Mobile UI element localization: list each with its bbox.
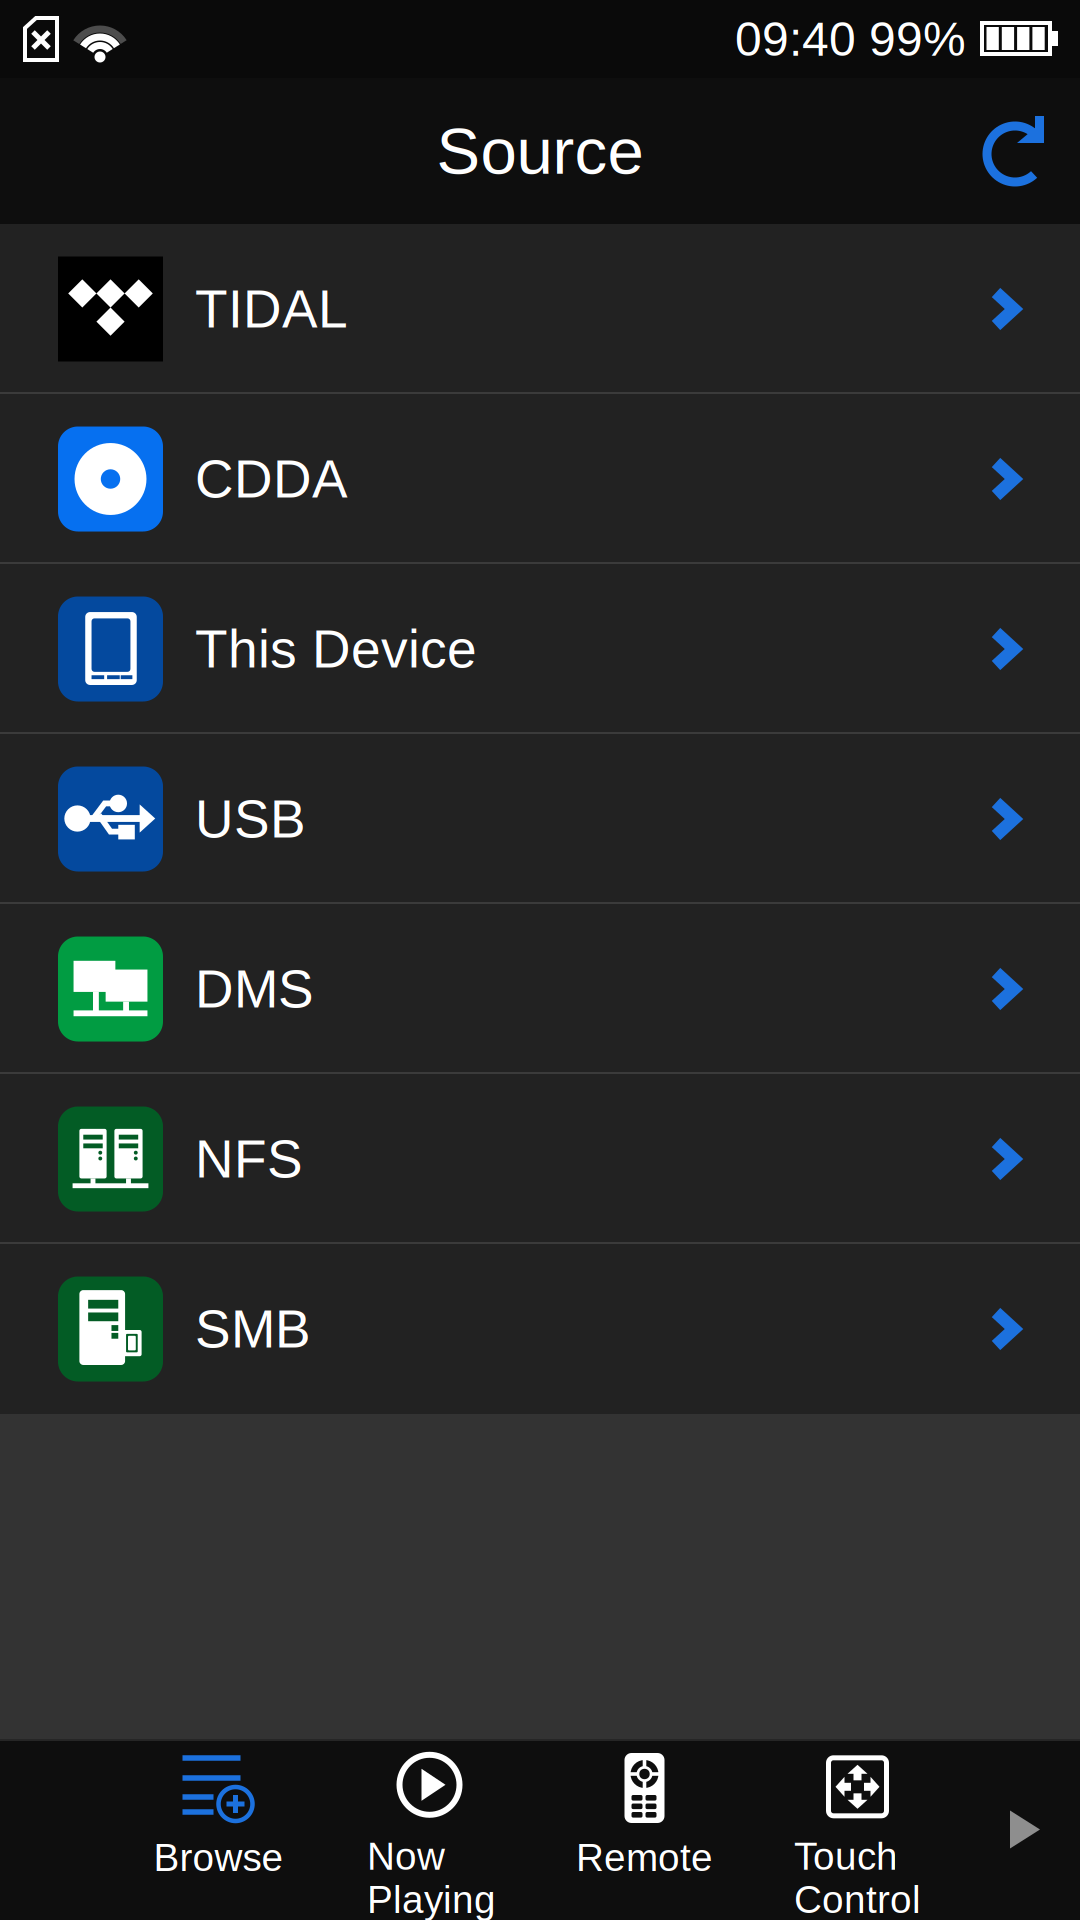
staticText: 09:40 99% <box>735 12 966 66</box>
button[interactable]: NFS <box>0 1074 1080 1244</box>
button[interactable]: TIDAL <box>0 224 1080 394</box>
staticText: This Device <box>195 619 477 679</box>
staticText: DMS <box>195 959 314 1019</box>
button[interactable]: Touch Control <box>751 1739 964 1920</box>
button[interactable]: Browse <box>112 1739 325 1920</box>
staticText: NFS <box>195 1129 303 1189</box>
staticText: Remote <box>576 1836 713 1879</box>
button[interactable]: USB <box>0 734 1080 904</box>
button[interactable]: More tabs <box>990 1770 1080 1888</box>
button[interactable]: SMB <box>0 1244 1080 1414</box>
staticText: Source <box>436 114 643 187</box>
staticText: Browse <box>153 1836 283 1879</box>
staticText: USB <box>195 789 306 849</box>
staticText: Touch Control <box>794 1835 921 1920</box>
button[interactable]: CDDA <box>0 394 1080 564</box>
staticText: CDDA <box>195 449 348 509</box>
button[interactable]: Remote <box>538 1739 751 1920</box>
button[interactable]: Refresh <box>952 89 1080 213</box>
button[interactable]: DMS <box>0 904 1080 1074</box>
staticText: SMB <box>195 1299 311 1359</box>
button[interactable]: This Device <box>0 564 1080 734</box>
button[interactable]: Now Playing <box>325 1739 538 1920</box>
staticText: TIDAL <box>195 279 348 339</box>
staticText: Now Playing <box>367 1835 496 1920</box>
